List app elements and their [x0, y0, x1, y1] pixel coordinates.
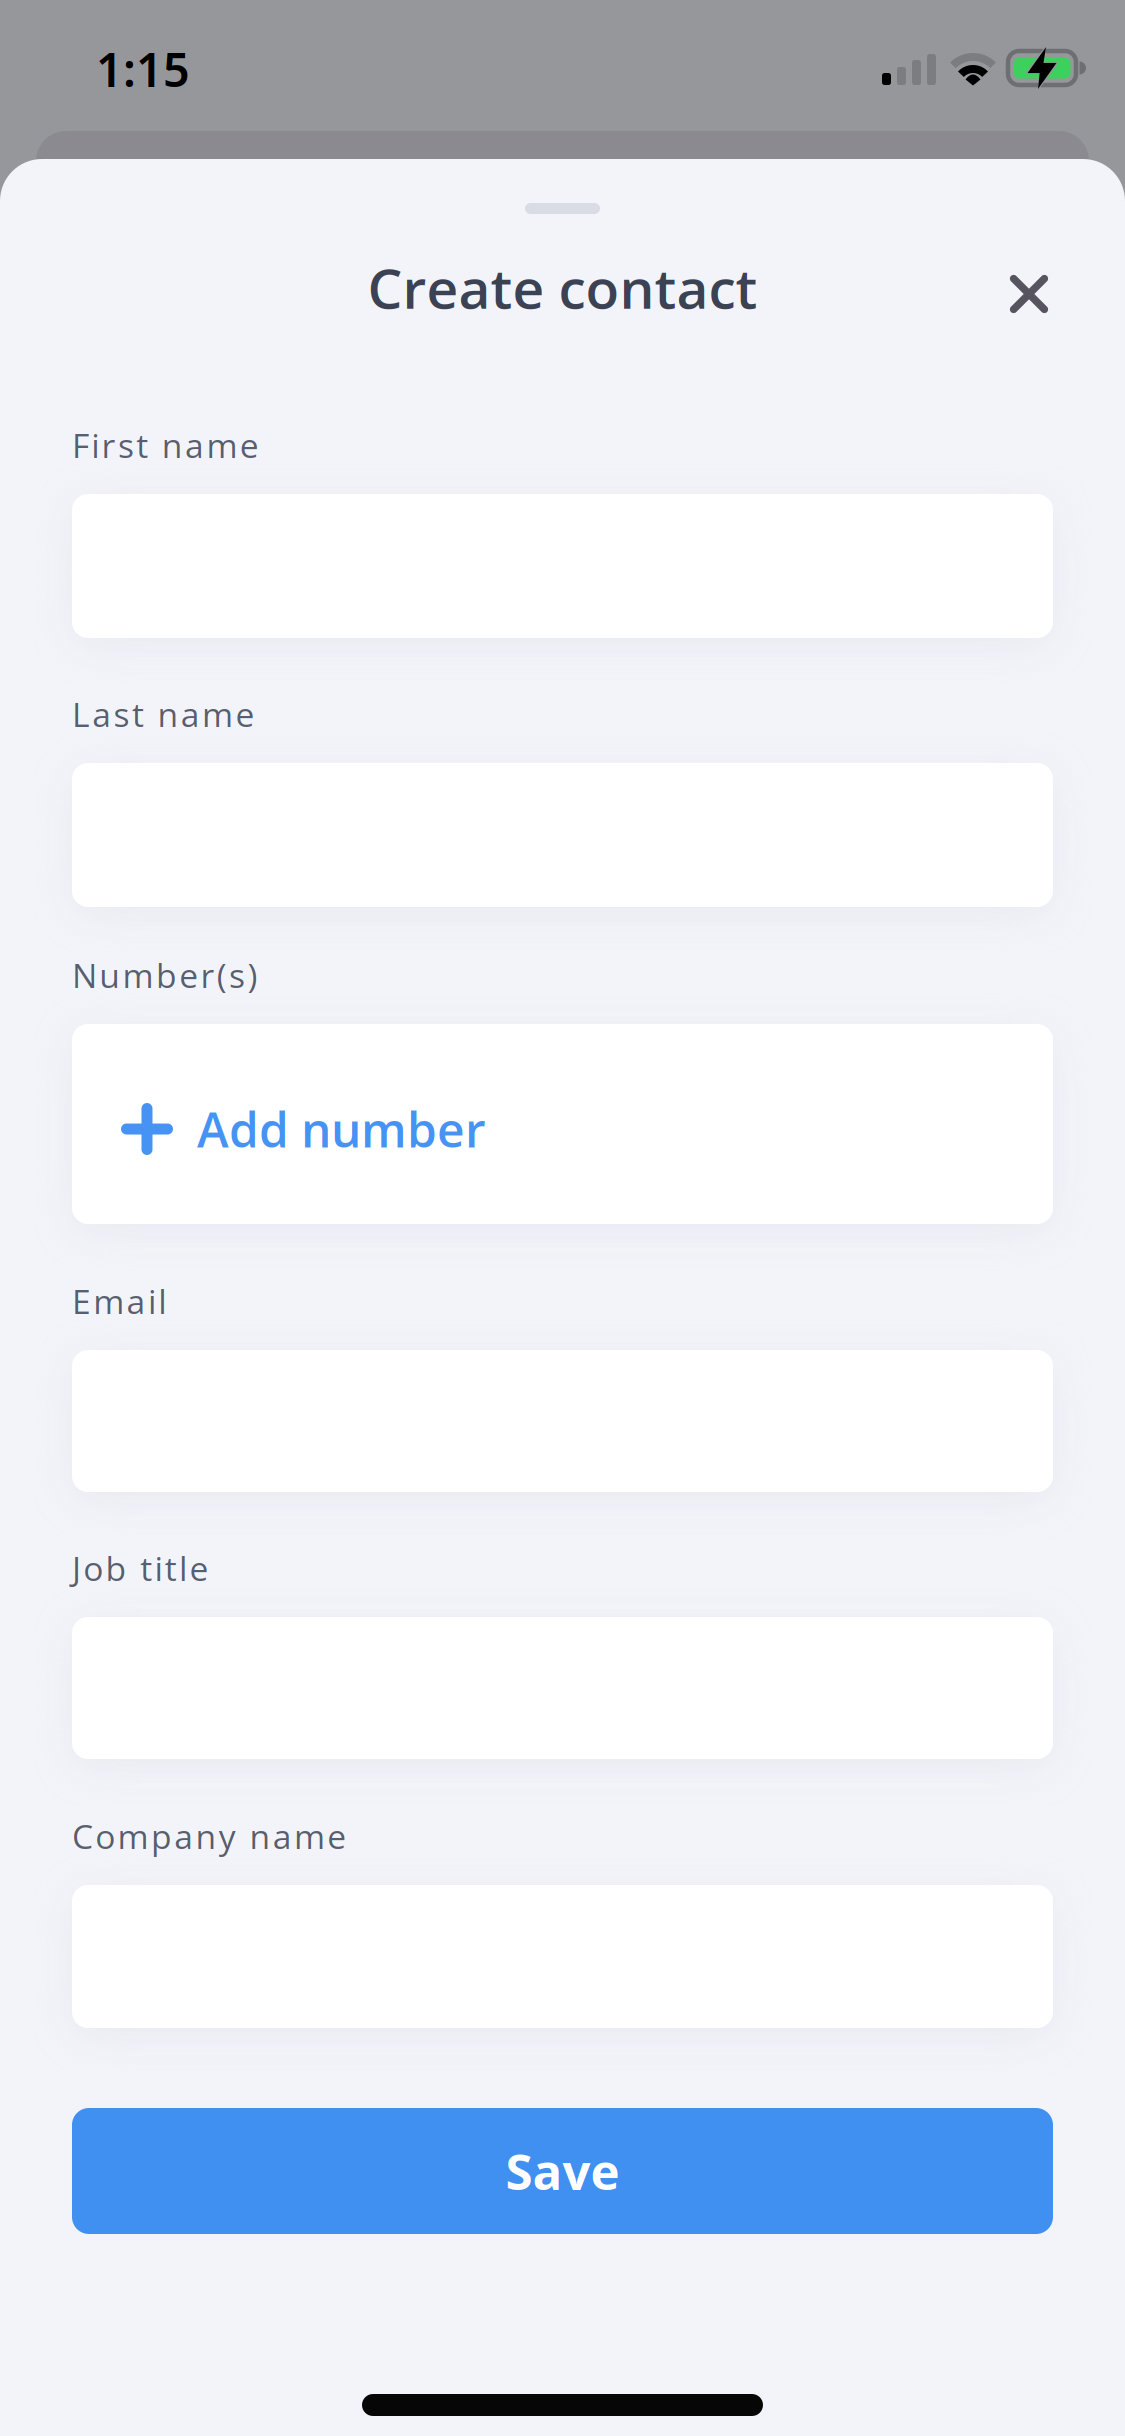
- staticText: 1:15: [96, 38, 190, 100]
- staticText: Company name: [72, 1813, 346, 1859]
- staticText: Email: [72, 1278, 166, 1324]
- button[interactable]: Save: [72, 2108, 1053, 2234]
- staticText: Create contact: [367, 250, 757, 325]
- staticText: Number(s): [72, 952, 257, 998]
- staticText: Last name: [72, 691, 254, 737]
- staticText: Add number: [197, 1096, 486, 1162]
- staticText: Job title: [72, 1545, 208, 1591]
- staticText: First name: [72, 422, 259, 468]
- button[interactable]: Close: [989, 254, 1069, 334]
- button[interactable]: Add number: [72, 1024, 1053, 1224]
- staticText: Save: [505, 2137, 619, 2204]
